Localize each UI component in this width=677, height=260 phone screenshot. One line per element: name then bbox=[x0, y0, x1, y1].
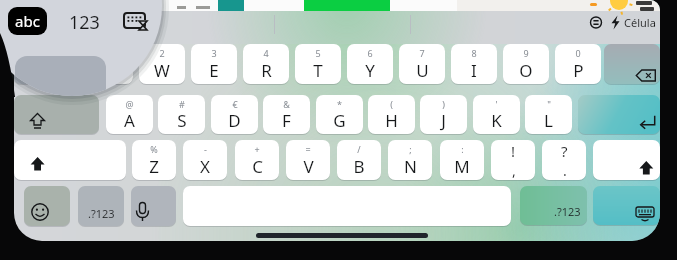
staticText: A bbox=[124, 109, 135, 132]
staticText: 0 bbox=[575, 47, 581, 59]
staticText: C bbox=[252, 155, 263, 178]
staticText: G bbox=[333, 109, 346, 132]
button[interactable]: ( bbox=[368, 95, 415, 134]
staticText: 123 bbox=[69, 10, 100, 32]
staticText: R bbox=[261, 59, 272, 82]
staticText: K bbox=[491, 109, 502, 132]
staticText: L bbox=[544, 109, 553, 132]
staticText: Q bbox=[103, 59, 117, 82]
button[interactable] bbox=[593, 186, 660, 225]
staticText: = bbox=[305, 143, 311, 155]
staticText: 5 bbox=[315, 47, 321, 59]
button[interactable]: - bbox=[183, 140, 227, 180]
button[interactable]: abc bbox=[8, 7, 47, 35]
button[interactable]: @ bbox=[106, 95, 153, 134]
button[interactable] bbox=[604, 44, 660, 84]
button[interactable]: 3 bbox=[191, 44, 237, 84]
button[interactable] bbox=[14, 44, 81, 84]
staticText: € bbox=[232, 98, 238, 110]
button[interactable]: & bbox=[263, 95, 310, 134]
button[interactable]: 8 bbox=[451, 44, 497, 84]
staticText: E bbox=[209, 59, 219, 82]
staticText: , bbox=[512, 161, 516, 180]
staticText: X bbox=[200, 155, 210, 178]
button[interactable]: ; bbox=[388, 140, 432, 180]
staticText: I bbox=[471, 59, 477, 82]
staticText: ' bbox=[495, 98, 498, 110]
staticText: 4 bbox=[263, 47, 269, 59]
button[interactable]: % bbox=[132, 140, 176, 180]
staticText: ( bbox=[390, 98, 393, 110]
button[interactable]: " bbox=[525, 95, 572, 134]
staticText: 3 bbox=[211, 47, 217, 59]
button[interactable]: Célula bbox=[574, 13, 656, 31]
button[interactable]: 4 bbox=[243, 44, 289, 84]
staticText: Z bbox=[149, 155, 159, 178]
staticText: / bbox=[357, 143, 361, 155]
staticText: H bbox=[385, 109, 398, 132]
button[interactable]: .?123 bbox=[78, 186, 124, 226]
button[interactable]: * bbox=[316, 95, 363, 134]
staticText: * bbox=[337, 98, 342, 110]
staticText: F bbox=[282, 109, 291, 132]
button[interactable] bbox=[131, 186, 176, 226]
button[interactable]: = bbox=[286, 140, 330, 180]
staticText: Y bbox=[365, 59, 375, 82]
button[interactable]: € bbox=[211, 95, 258, 134]
button[interactable]: 2 bbox=[139, 44, 185, 84]
staticText: D bbox=[228, 109, 241, 132]
button[interactable]: ! bbox=[491, 140, 535, 180]
staticText: ? bbox=[561, 141, 568, 161]
staticText: 6 bbox=[367, 47, 373, 59]
staticText: - bbox=[204, 143, 207, 155]
staticText: . bbox=[563, 161, 567, 180]
button[interactable]: ) bbox=[420, 95, 467, 134]
staticText: 8 bbox=[471, 47, 477, 59]
staticText: : bbox=[461, 143, 464, 155]
staticText: & bbox=[283, 98, 290, 110]
staticText: ) bbox=[442, 98, 445, 110]
staticText: @ bbox=[125, 98, 134, 110]
button[interactable]: 5 bbox=[295, 44, 341, 84]
staticText: N bbox=[404, 155, 417, 178]
staticText: " bbox=[547, 98, 551, 110]
button[interactable]: .?123 bbox=[520, 186, 587, 225]
staticText: S bbox=[177, 109, 187, 132]
staticText: T bbox=[313, 59, 323, 82]
button[interactable]: 6 bbox=[347, 44, 393, 84]
staticText: M bbox=[454, 155, 470, 178]
staticText: # bbox=[179, 98, 185, 110]
button[interactable] bbox=[183, 186, 511, 226]
staticText: O bbox=[519, 59, 533, 82]
staticText: abc bbox=[15, 11, 40, 31]
staticText: J bbox=[441, 109, 446, 132]
button[interactable]: # bbox=[158, 95, 205, 134]
staticText: U bbox=[416, 59, 429, 82]
button[interactable]: 9 bbox=[503, 44, 549, 84]
button[interactable]: 123 bbox=[66, 10, 102, 32]
staticText: V bbox=[303, 155, 314, 178]
button[interactable]: / bbox=[337, 140, 381, 180]
staticText: P bbox=[573, 59, 584, 82]
staticText: + bbox=[254, 143, 260, 155]
button[interactable] bbox=[14, 95, 99, 134]
button[interactable]: + bbox=[235, 140, 279, 180]
staticText: 9 bbox=[523, 47, 529, 59]
button[interactable]: 1 bbox=[87, 44, 133, 84]
button[interactable]: : bbox=[440, 140, 484, 180]
button[interactable] bbox=[593, 140, 660, 180]
button[interactable] bbox=[14, 140, 126, 180]
button[interactable]: ? bbox=[542, 140, 586, 180]
staticText: 7 bbox=[419, 47, 425, 59]
staticText: % bbox=[150, 143, 158, 155]
button[interactable]: 0 bbox=[555, 44, 601, 84]
staticText: 2 bbox=[159, 47, 165, 59]
button[interactable]: ' bbox=[473, 95, 520, 134]
button[interactable]: 7 bbox=[399, 44, 445, 84]
staticText: Célula bbox=[624, 15, 656, 30]
button[interactable] bbox=[24, 186, 70, 226]
button[interactable] bbox=[578, 95, 660, 134]
staticText: .?123 bbox=[554, 204, 581, 219]
staticText: ! bbox=[511, 141, 516, 161]
